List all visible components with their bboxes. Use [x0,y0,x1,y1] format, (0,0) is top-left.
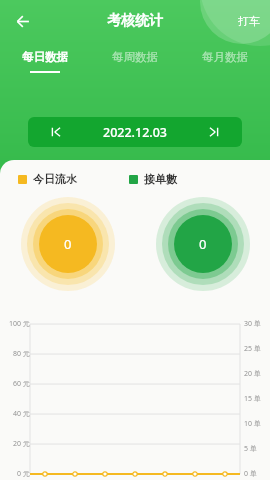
button[interactable]: Next day [202,121,224,143]
button[interactable]: Previous day [28,117,242,147]
staticText: 100 元 [9,319,30,329]
staticText: 打车 [238,14,260,28]
staticText: 60 元 [13,379,30,389]
button[interactable]: Back [8,6,38,36]
staticText: 今日流水 [33,172,77,186]
staticText: 0 [64,235,72,253]
staticText: 0 [199,235,207,253]
staticText: 30 单 [244,319,261,329]
button[interactable]: Previous day [46,121,68,143]
staticText: 20 单 [244,369,261,379]
staticText: 5 单 [244,444,257,454]
staticText: 每周数据 [112,50,158,64]
staticText: 0 单 [244,469,257,479]
staticText: 25 单 [244,344,261,354]
button[interactable]: 接单數 [129,172,177,186]
button[interactable]: 每月数据 [180,50,270,71]
staticText: 15 单 [244,394,261,404]
staticText: 考核统计 [107,12,163,30]
staticText: 20 元 [13,439,30,449]
staticText: 每月数据 [202,50,248,64]
staticText: 10 单 [244,419,261,429]
staticText: 0 元 [17,469,30,479]
button[interactable]: 每周数据 [90,50,180,71]
button[interactable]: 打车 [238,14,260,28]
staticText: 40 元 [13,409,30,419]
button[interactable]: 今日流水 [18,172,77,186]
button[interactable]: 每日数据 [0,50,90,73]
staticText: 每日数据 [22,50,68,64]
staticText: 接单數 [144,172,177,186]
staticText: 80 元 [13,349,30,359]
staticText: 2022.12.03 [103,124,168,141]
